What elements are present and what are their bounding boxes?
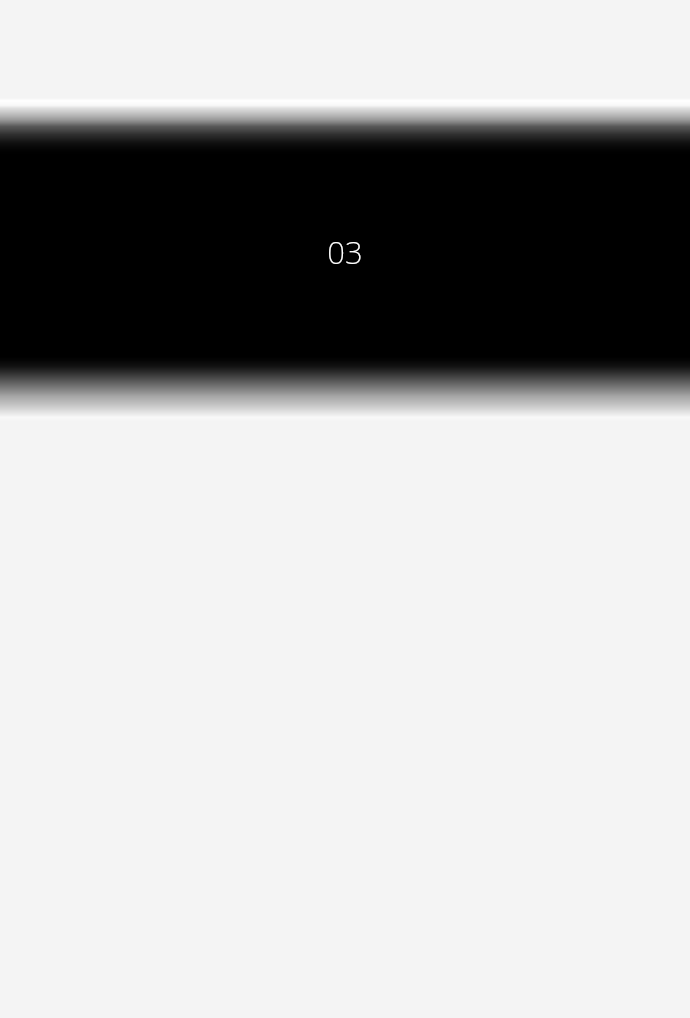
staticText: 03 (327, 231, 363, 273)
button[interactable]: 03 (0, 155, 690, 356)
